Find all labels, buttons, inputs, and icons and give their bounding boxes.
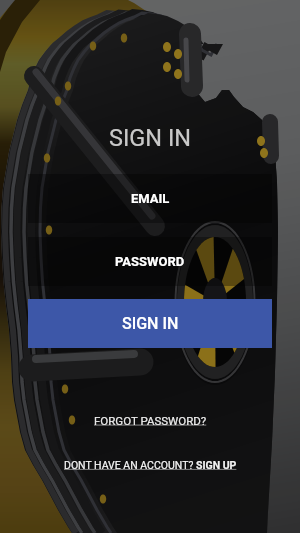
button[interactable]: EMAIL: [28, 174, 272, 223]
button[interactable]: SIGN IN: [28, 299, 272, 348]
button[interactable]: FORGOT PASSWORD?: [0, 414, 300, 427]
button[interactable]: PASSWORD: [28, 237, 272, 286]
staticText: SIGN IN: [122, 314, 179, 333]
staticText: EMAIL: [131, 191, 170, 206]
staticText: SIGN IN: [0, 124, 300, 152]
staticText: DONT HAVE AN ACCOUNT? SIGN UP: [64, 459, 237, 471]
staticText: PASSWORD: [115, 254, 185, 269]
staticText: FORGOT PASSWORD?: [94, 414, 207, 427]
button[interactable]: DONT HAVE AN ACCOUNT? SIGN UP: [0, 459, 300, 471]
